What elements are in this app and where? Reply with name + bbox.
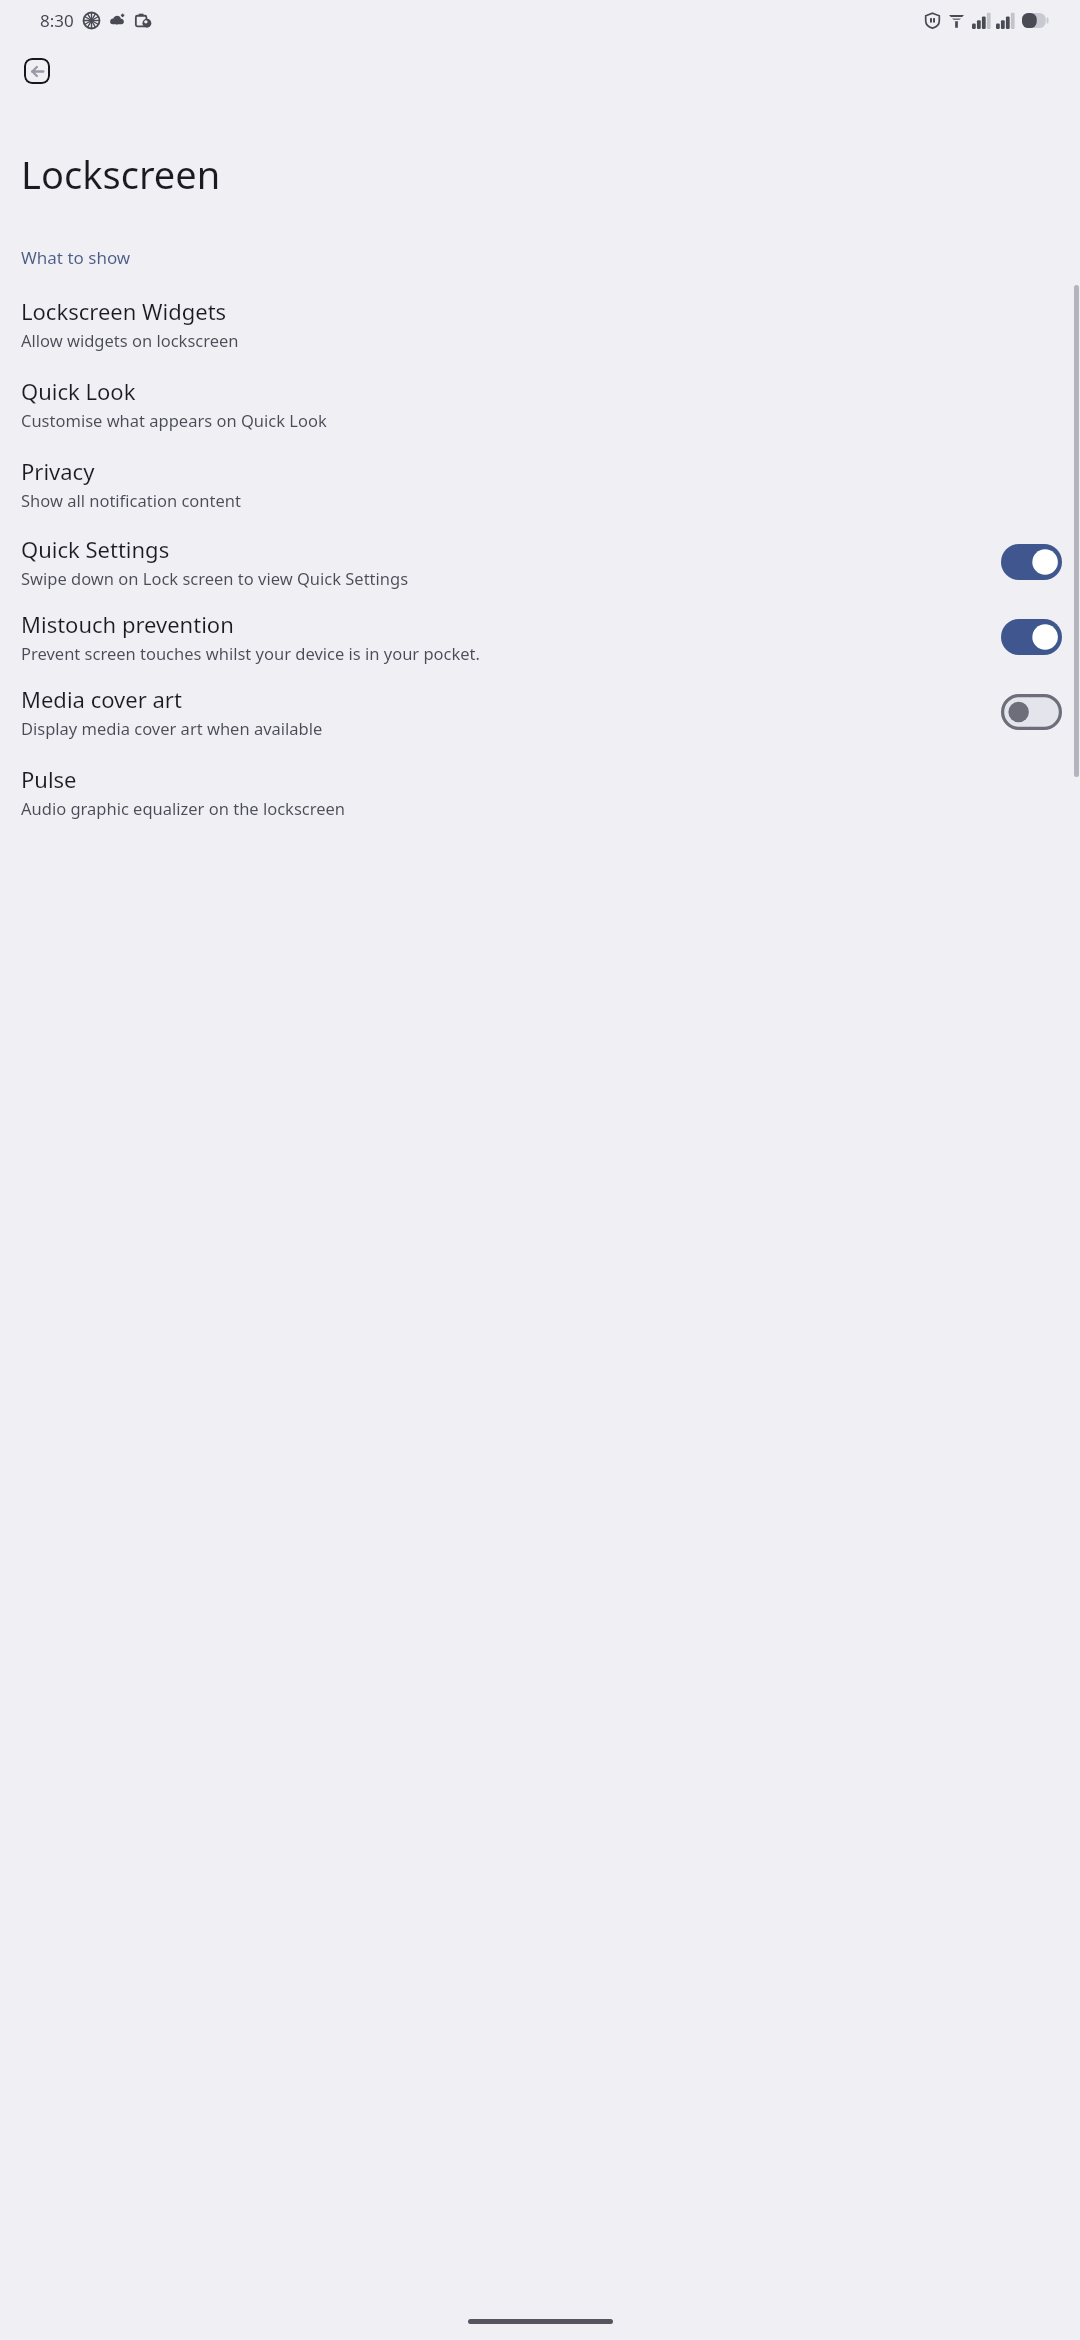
staticText: Prevent screen touches whilst your devic…: [21, 642, 480, 664]
staticText: Media cover art: [21, 684, 182, 714]
staticText: Lockscreen Widgets: [21, 296, 227, 326]
staticText: Lockscreen: [21, 148, 221, 200]
staticText: Quick Look: [21, 376, 136, 406]
button[interactable]: Lockscreen Widgets: [0, 296, 1080, 351]
button[interactable]: Quick Settings: [0, 534, 1080, 589]
staticText: Privacy: [21, 456, 95, 486]
staticText: Show all notification content: [21, 489, 241, 511]
button[interactable]: Toggle on: [1001, 619, 1062, 655]
staticText: Display media cover art when available: [21, 717, 323, 739]
button[interactable]: Pulse: [0, 764, 1080, 819]
button[interactable]: Toggle on: [1001, 544, 1062, 580]
staticText: Mistouch prevention: [21, 609, 234, 639]
button[interactable]: Back: [24, 58, 50, 84]
button[interactable]: Toggle off: [1001, 694, 1062, 730]
staticText: Audio graphic equalizer on the lockscree…: [21, 797, 346, 819]
staticText: 8:30: [40, 9, 74, 32]
button[interactable]: Media cover art: [0, 684, 1080, 739]
staticText: Pulse: [21, 764, 77, 794]
button[interactable]: Privacy: [0, 456, 1080, 511]
staticText: What to show: [21, 246, 131, 269]
button[interactable]: Quick Look: [0, 376, 1080, 431]
staticText: Allow widgets on lockscreen: [21, 329, 239, 351]
staticText: Quick Settings: [21, 534, 170, 564]
button[interactable]: Mistouch prevention: [0, 609, 1080, 664]
staticText: Customise what appears on Quick Look: [21, 409, 327, 431]
staticText: Swipe down on Lock screen to view Quick …: [21, 567, 409, 589]
